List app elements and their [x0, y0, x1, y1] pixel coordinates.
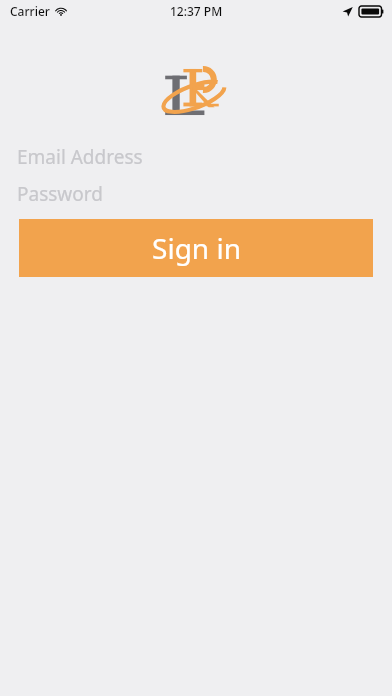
other: LR logo: [161, 68, 231, 116]
button[interactable]: Password: [0, 175, 392, 212]
staticText: Carrier: [10, 3, 50, 19]
staticText: Email Address: [17, 144, 143, 170]
staticText: 12:37 PM: [170, 3, 223, 19]
button[interactable]: Sign in: [19, 219, 373, 277]
staticText: Sign in: [152, 229, 241, 267]
staticText: Password: [17, 181, 103, 207]
button[interactable]: Email Address: [0, 138, 392, 175]
